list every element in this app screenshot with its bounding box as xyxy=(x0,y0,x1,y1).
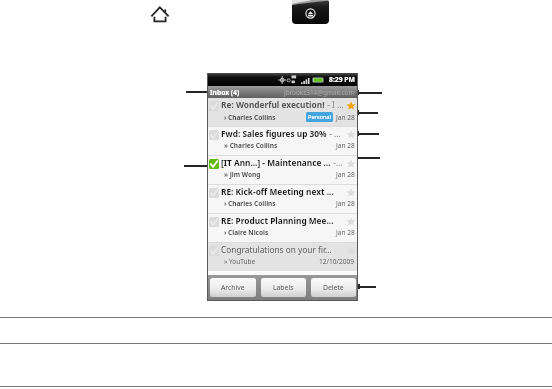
staticText: › Claire Nicols xyxy=(224,228,269,237)
staticText: Fwd: Sales figures up 30% xyxy=(221,128,327,139)
staticText: - ... xyxy=(327,128,341,139)
staticText: Jan 28 xyxy=(336,170,355,179)
staticText: RE: Kick-off Meeting next ... xyxy=(221,186,334,197)
button[interactable]: Star xyxy=(345,100,356,111)
button[interactable]: Collapse xyxy=(292,0,329,24)
button[interactable] xyxy=(209,130,219,140)
staticText: -... xyxy=(331,157,343,168)
staticText: Personal xyxy=(308,113,331,121)
staticText: Jan 28 xyxy=(336,199,355,208)
staticText: Inbox (4) xyxy=(210,88,240,97)
button[interactable] xyxy=(209,159,219,169)
staticText: » Charles Collins xyxy=(224,141,278,150)
button[interactable]: RE: Product Planning Mee... xyxy=(208,214,357,242)
button[interactable]: RE: Kick-off Meeting next ... xyxy=(208,185,357,213)
button[interactable]: Re: Wonderful execution! xyxy=(208,98,357,126)
button[interactable] xyxy=(209,217,219,227)
button[interactable] xyxy=(209,188,219,198)
staticText: Delete xyxy=(323,283,344,292)
button[interactable]: Star xyxy=(345,158,356,169)
staticText: [IT Ann...] - Maintenance ... xyxy=(221,157,331,168)
staticText: › Charles Collins xyxy=(224,199,276,208)
staticText: 12/10/2009 xyxy=(319,257,355,266)
button[interactable]: Star xyxy=(345,129,356,140)
staticText: - I ... xyxy=(325,99,344,110)
button[interactable]: Archive xyxy=(210,278,256,297)
staticText: Re: Wonderful execution! xyxy=(221,99,325,110)
button[interactable]: Congratulations on your fir... xyxy=(208,243,357,271)
button[interactable]: Star xyxy=(345,187,356,198)
other: Home xyxy=(151,7,169,22)
staticText: » Jim Wong xyxy=(224,170,261,179)
staticText: Jan 28 xyxy=(336,113,355,122)
staticText: » YouTube xyxy=(224,257,256,266)
staticText: Archive xyxy=(221,283,245,292)
staticText: 8:29 PM xyxy=(329,75,355,84)
staticText: jbrooks314@gmail.com xyxy=(284,88,355,97)
staticText: › Charles Collins xyxy=(224,113,276,122)
button[interactable]: Delete xyxy=(311,278,356,297)
button[interactable]: Star xyxy=(345,216,356,227)
button[interactable]: Labels xyxy=(261,278,306,297)
staticText: Labels xyxy=(273,283,294,292)
staticText: RE: Product Planning Mee... xyxy=(221,215,334,226)
button[interactable]: [IT Ann...] - Maintenance ... xyxy=(208,156,357,184)
staticText: Jan 28 xyxy=(336,228,355,237)
button[interactable] xyxy=(209,246,219,256)
button[interactable]: Fwd: Sales figures up 30% xyxy=(208,127,357,155)
staticText: Jan 28 xyxy=(336,141,355,150)
staticText: Congratulations on your fir... xyxy=(221,244,332,255)
button[interactable] xyxy=(209,101,219,111)
